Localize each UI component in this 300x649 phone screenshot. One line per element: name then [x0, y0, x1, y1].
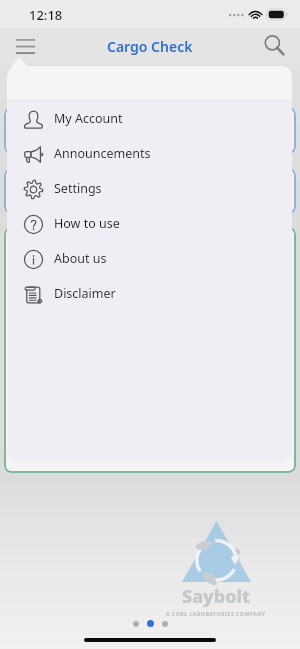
button[interactable]: Settings	[7, 171, 292, 206]
staticText: Announcements	[54, 145, 151, 162]
staticText: About us	[54, 250, 107, 267]
staticText: My Account	[54, 110, 123, 127]
button[interactable]: Menu	[6, 29, 44, 63]
staticText: How to use	[54, 215, 120, 232]
staticText: Saybolt	[182, 584, 251, 609]
button[interactable]: How to use	[7, 206, 292, 241]
staticText: Settings	[54, 180, 102, 197]
staticText: 12:18	[29, 6, 63, 24]
button[interactable]: About us	[7, 241, 292, 276]
button[interactable]: Search	[259, 30, 291, 62]
button[interactable]: Announcements	[7, 136, 292, 171]
staticText: A CORE LABORATORIES COMPANY	[166, 610, 266, 617]
button[interactable]: Disclaimer	[7, 276, 292, 311]
button[interactable]: My Account	[7, 101, 292, 136]
staticText: Disclaimer	[54, 285, 116, 302]
staticText: Cargo Check	[107, 37, 193, 56]
